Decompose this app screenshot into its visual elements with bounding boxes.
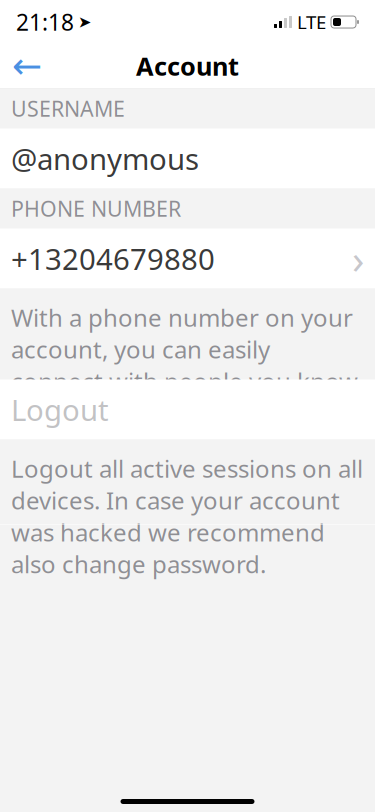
staticText: With a phone number on your account, you… [11, 301, 363, 397]
staticText: LTE [297, 10, 326, 34]
staticText: Logout [11, 390, 109, 429]
staticText: 21:18 [16, 7, 74, 37]
staticText: Logout all active sessions on all device… [11, 452, 363, 580]
staticText: › [352, 232, 364, 285]
button[interactable]: Logout [0, 379, 375, 439]
staticText: ← [12, 46, 42, 86]
staticText: Account [136, 49, 239, 83]
button[interactable]: +13204679880 [0, 228, 375, 288]
staticText: USERNAME [11, 94, 125, 123]
staticText: +13204679880 [11, 239, 215, 278]
staticText: @anonymous [11, 139, 199, 178]
staticText: PHONE NUMBER [11, 194, 181, 223]
button[interactable]: Back [0, 44, 54, 88]
staticText: ➤ [78, 13, 91, 31]
